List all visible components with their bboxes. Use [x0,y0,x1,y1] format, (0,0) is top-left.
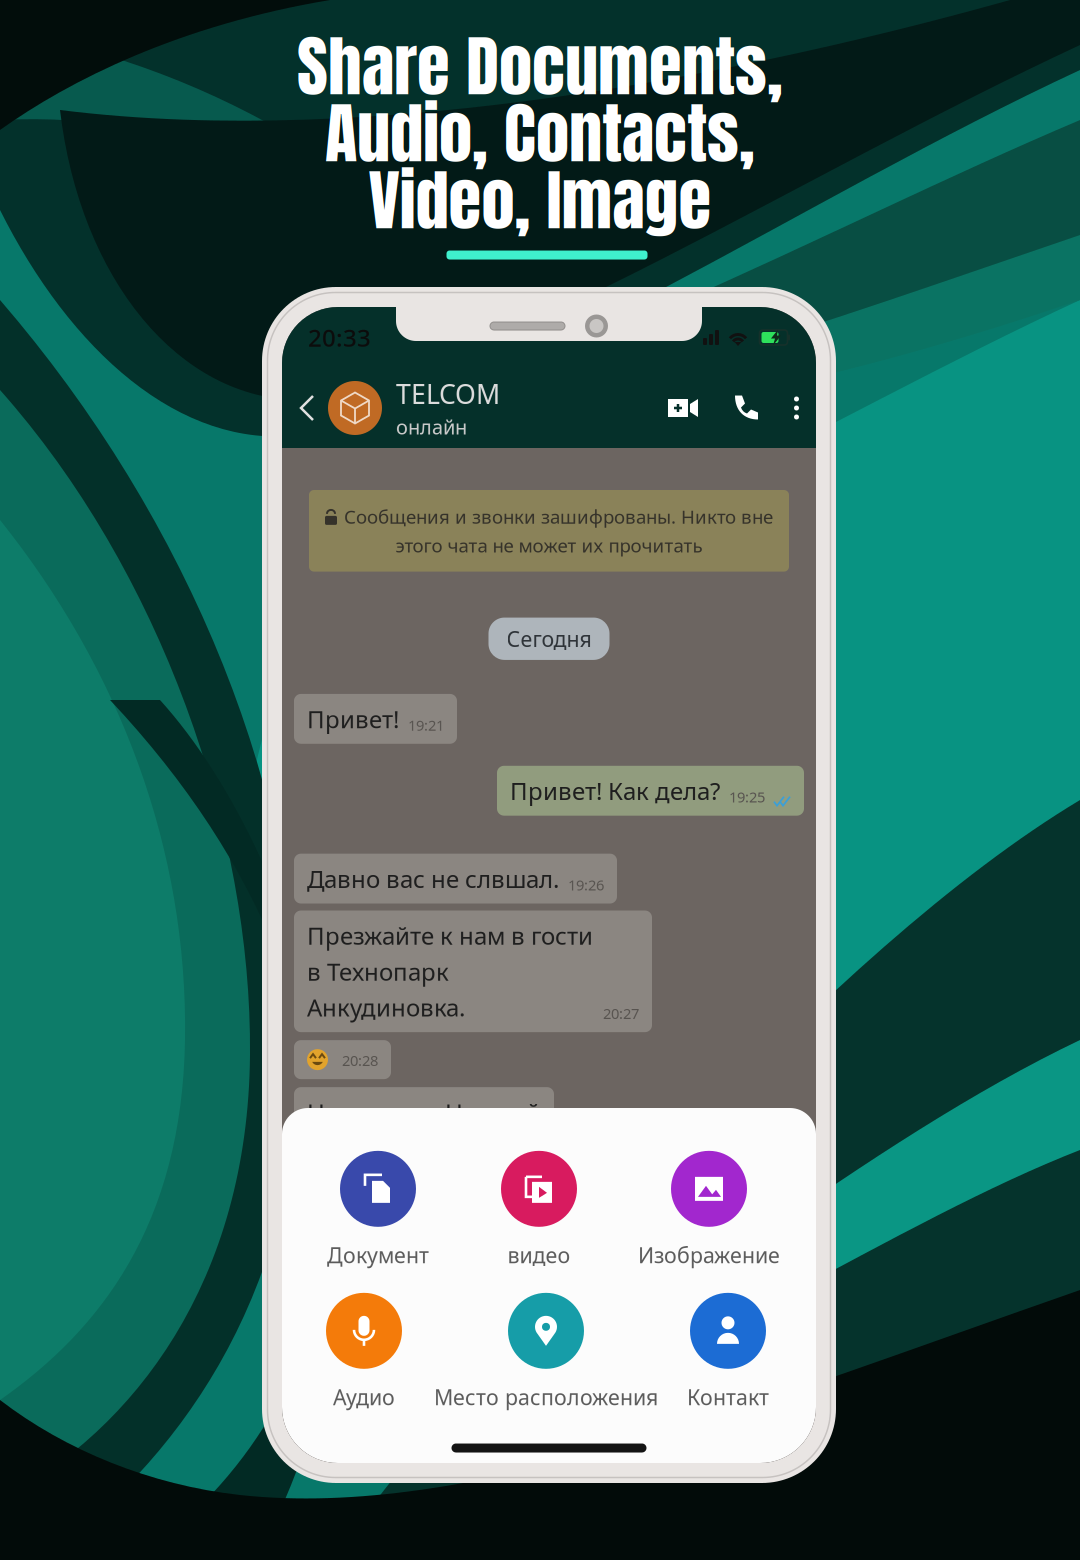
staticText: Аудио [333,1383,395,1411]
staticText: Анкудиновка. [307,991,465,1023]
staticText: Video, Image [368,150,711,250]
staticText: 20:28 [342,1051,378,1070]
staticText: в Технопарк [307,955,449,987]
button[interactable]: Документ [327,1151,429,1269]
staticText: Документ [327,1241,429,1269]
button[interactable]: Video call [657,397,716,419]
staticText: Наш адрес: Нижний [307,1096,541,1128]
staticText: Привет! Как дела? [510,775,720,807]
staticText: 20:33 [308,322,371,353]
staticText: 19:25 [729,787,765,807]
staticText: Привет! [307,703,399,735]
staticText: Сегодня [506,625,591,653]
staticText: этого чата не может их прочитать [395,533,702,558]
staticText: видео [507,1241,570,1269]
staticText: Audio, Contacts, [325,83,755,183]
staticText: Место расположения [434,1383,658,1411]
staticText: Контакт [687,1383,769,1411]
button[interactable]: Back [298,394,328,422]
button[interactable]: Контакт [687,1293,769,1411]
staticText: Сообщения и звонки зашифрованы. Никто вн… [344,504,773,529]
staticText: 19:21 [408,715,444,735]
button[interactable]: видео [501,1151,577,1269]
staticText: TELCOM [396,376,500,411]
staticText: Давно вас не слвшал. [307,863,559,895]
button[interactable]: More options [779,396,802,419]
button[interactable]: Место расположения [434,1293,658,1411]
staticText: Share Documents, [297,16,783,116]
staticText: Презжайте к нам в гости [307,919,593,951]
button[interactable]: Изображение [638,1151,780,1269]
button[interactable]: Voice call [716,394,779,421]
staticText: онлайн [396,413,467,440]
staticText: 19:26 [568,875,604,894]
staticText: Изображение [638,1241,780,1269]
staticText: 20:27 [603,1004,639,1023]
button[interactable]: Аудио [326,1293,402,1411]
